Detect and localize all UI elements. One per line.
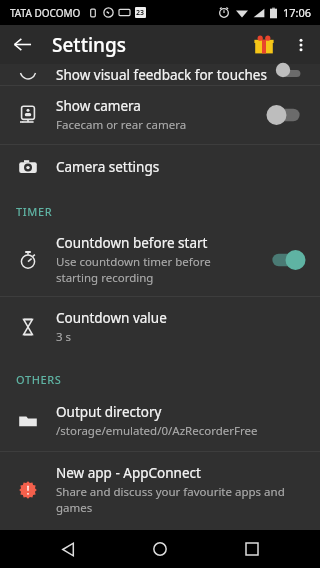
staticText: Show visual feedback for touches (56, 66, 267, 84)
button[interactable]: Countdown before start (0, 223, 320, 296)
button[interactable]: Toggle on (266, 247, 306, 273)
staticText: New app - AppConnect (56, 464, 201, 482)
staticText: 3 s (56, 329, 72, 345)
button[interactable]: Home (136, 530, 184, 568)
button[interactable]: Camera settings (0, 145, 320, 189)
staticText: OTHERS (16, 372, 62, 387)
staticText: Countdown before start (56, 234, 208, 252)
staticText: 17:06 (283, 5, 312, 20)
button[interactable]: Show visual feedback for touches (0, 64, 320, 85)
button[interactable]: New app - AppConnect (0, 452, 320, 527)
button[interactable]: Back (44, 530, 92, 568)
button[interactable]: Back (0, 25, 44, 64)
button[interactable]: Gift (244, 25, 284, 64)
button[interactable]: Recent apps (228, 530, 276, 568)
staticText: Share and discuss your favourite apps an… (56, 484, 285, 515)
staticText: Settings (52, 32, 126, 58)
button[interactable]: Toggle off (266, 102, 306, 128)
staticText: Show camera (56, 97, 141, 115)
staticText: Facecam or rear camera (56, 117, 187, 133)
button[interactable]: Output directory (0, 391, 320, 451)
staticText: Use countdown timer before starting reco… (56, 254, 211, 285)
staticText: Camera settings (56, 158, 160, 176)
staticText: 23 (136, 8, 145, 18)
staticText: Output directory (56, 403, 162, 421)
button[interactable]: Show camera (0, 86, 320, 144)
staticText: /storage/emulated/0/AzRecorderFree (56, 423, 258, 439)
button[interactable]: Countdown value (0, 297, 320, 357)
button[interactable]: More options (284, 28, 318, 62)
staticText: Countdown value (56, 309, 167, 327)
staticText: TIMER (16, 204, 53, 219)
staticText: TATA DOCOMO (10, 6, 81, 20)
